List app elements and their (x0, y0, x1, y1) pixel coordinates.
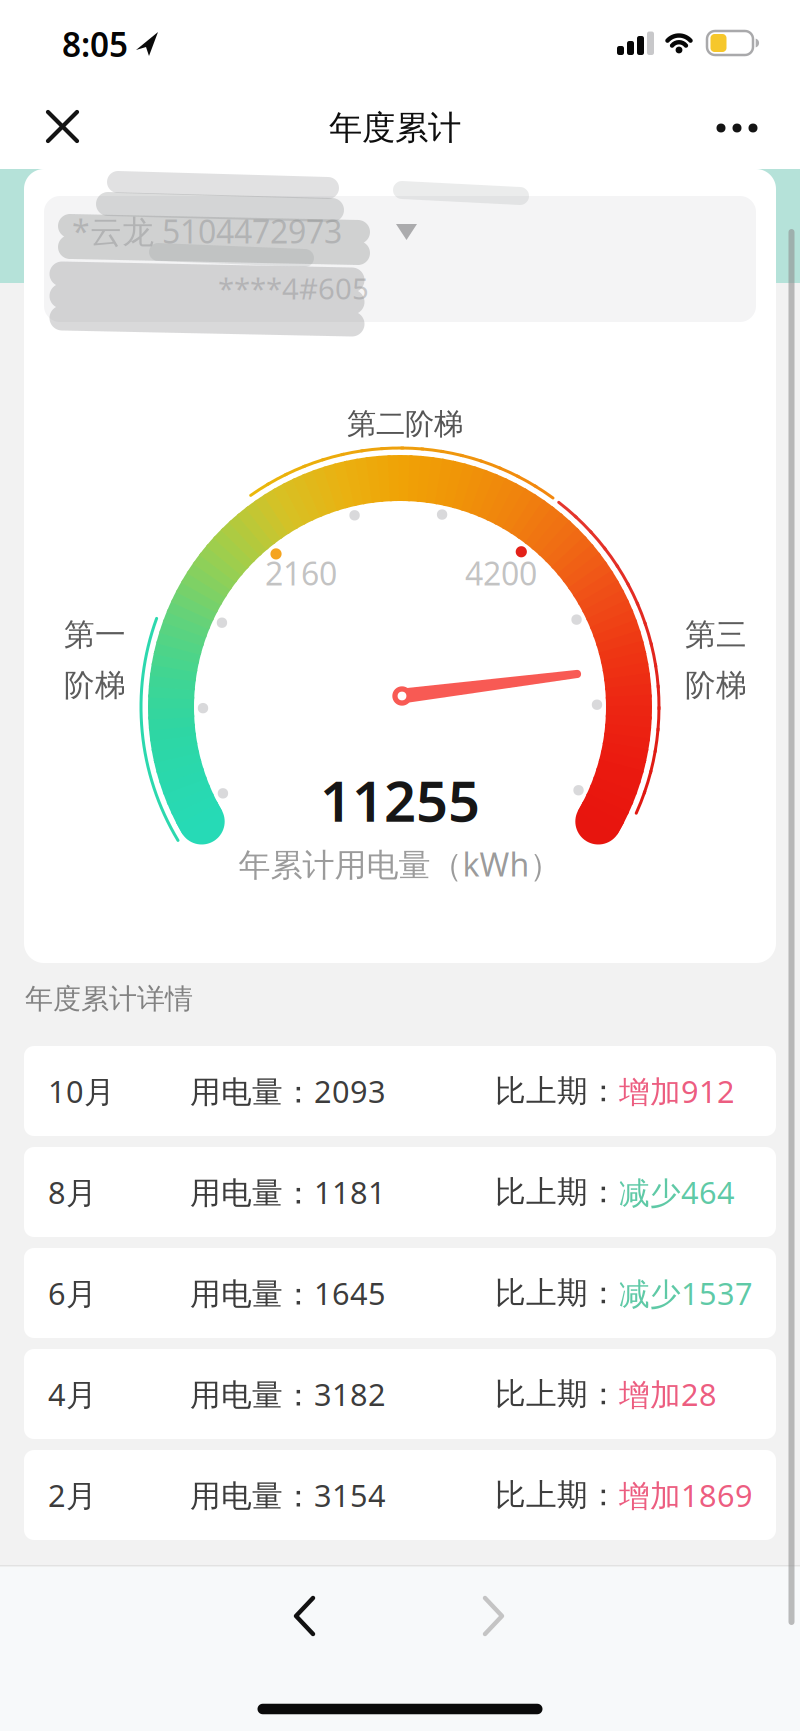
staticText: 年累计用电量（kWh） (238, 843, 561, 885)
staticText: 比上期： (495, 1173, 619, 1211)
staticText: 增加912 (619, 1071, 735, 1111)
staticText: 阶梯 (64, 666, 126, 704)
staticText: 减少464 (619, 1172, 735, 1212)
button[interactable]: 账户选择 (44, 196, 756, 322)
staticText: 第一 (64, 616, 126, 653)
staticText: 用电量：3182 (190, 1374, 386, 1414)
staticText: 用电量：3154 (190, 1475, 386, 1515)
staticText: 比上期： (495, 1274, 619, 1312)
staticText: 第二阶梯 (347, 406, 463, 442)
button[interactable]: 8月 (24, 1147, 776, 1237)
staticText: 增加28 (619, 1374, 717, 1414)
staticText: 6月 (48, 1273, 97, 1313)
staticText: 2月 (48, 1475, 97, 1515)
staticText: 比上期： (495, 1375, 619, 1413)
staticText: 阶梯 (685, 666, 747, 704)
button[interactable]: 10月 (24, 1046, 776, 1136)
button[interactable]: More (705, 106, 769, 150)
staticText: 4200 (465, 552, 537, 594)
staticText: 用电量：1181 (190, 1172, 386, 1212)
button[interactable]: 4月 (24, 1349, 776, 1439)
staticText: 第三 (685, 616, 747, 653)
staticText: 8月 (48, 1172, 97, 1212)
staticText: 比上期： (495, 1072, 619, 1110)
button[interactable]: Back (290, 1594, 320, 1638)
staticText: 用电量：2093 (190, 1071, 386, 1111)
staticText: 10月 (48, 1071, 115, 1111)
staticText: 比上期： (495, 1476, 619, 1514)
staticText: 8:05 (62, 22, 128, 66)
staticText: 年度累计 (329, 107, 461, 148)
staticText: 用电量：1645 (190, 1273, 386, 1313)
staticText: 4月 (48, 1374, 97, 1414)
button[interactable]: 2月 (24, 1450, 776, 1540)
staticText: 增加1869 (619, 1475, 753, 1515)
staticText: ****4#605 (218, 268, 369, 307)
button[interactable]: Close (30, 94, 94, 158)
staticText: 年度累计详情 (25, 982, 193, 1016)
staticText: 11255 (320, 763, 480, 837)
staticText: *云龙 5104472973 (72, 210, 342, 252)
button[interactable]: Forward (478, 1594, 508, 1638)
staticText: 减少1537 (619, 1273, 753, 1313)
button[interactable]: 6月 (24, 1248, 776, 1338)
staticText: 2160 (265, 552, 337, 594)
